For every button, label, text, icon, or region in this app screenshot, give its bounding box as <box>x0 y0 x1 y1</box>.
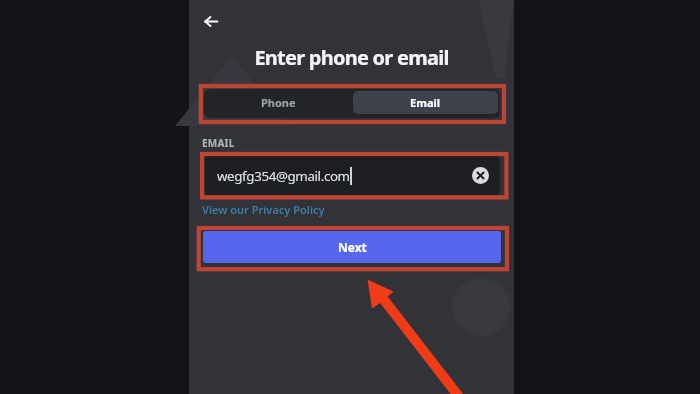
staticText: Email <box>410 95 441 110</box>
button[interactable]: View our Privacy Policy <box>202 202 325 217</box>
button[interactable]: Phone <box>204 89 352 117</box>
button[interactable]: wegfg354@gmail.com <box>204 156 500 195</box>
staticText: Phone <box>261 95 296 110</box>
staticText: Enter phone or email <box>189 44 514 71</box>
staticText: EMAIL <box>202 136 235 150</box>
button[interactable]: Clear <box>472 167 489 184</box>
button[interactable]: Email <box>353 91 498 114</box>
button[interactable]: Back <box>192 5 229 38</box>
button[interactable]: Next <box>203 231 501 263</box>
staticText: wegfg354@gmail.com <box>217 167 350 185</box>
staticText: Next <box>338 239 367 255</box>
